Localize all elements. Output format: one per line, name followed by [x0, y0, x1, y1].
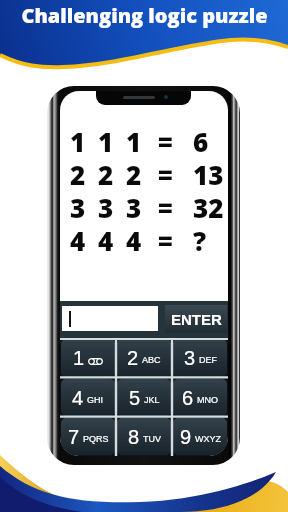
staticText: ?: [193, 223, 207, 256]
staticText: 3: [70, 190, 86, 223]
staticText: WXYZ: [195, 434, 221, 444]
staticText: =: [158, 190, 173, 223]
staticText: =: [158, 124, 173, 157]
staticText: 2: [98, 157, 114, 190]
staticText: 3: [98, 190, 114, 223]
button[interactable]: 1: [61, 339, 115, 377]
staticText: JKL: [144, 395, 160, 405]
staticText: 1: [73, 347, 85, 369]
staticText: 8: [128, 426, 140, 448]
staticText: ENTER: [171, 311, 222, 328]
button[interactable]: 7: [61, 418, 115, 455]
staticText: =: [158, 157, 173, 190]
staticText: 4: [126, 223, 142, 256]
staticText: ABC: [142, 355, 161, 365]
staticText: 4: [72, 387, 84, 409]
button[interactable]: 5: [117, 379, 171, 416]
staticText: 1: [70, 124, 86, 157]
staticText: 9: [180, 426, 192, 448]
staticText: 2: [127, 347, 139, 369]
staticText: 7: [68, 426, 80, 448]
staticText: =: [158, 223, 173, 256]
button[interactable]: ENTER: [165, 305, 227, 333]
staticText: 13: [193, 157, 224, 190]
staticText: 1: [126, 124, 142, 157]
staticText: Challenging logic puzzle: [21, 2, 268, 29]
button[interactable]: 3: [173, 339, 227, 377]
button[interactable]: 6: [173, 379, 227, 416]
button[interactable]: 9: [173, 418, 227, 455]
staticText: TUV: [143, 434, 161, 444]
staticText: MNO: [197, 395, 218, 405]
staticText: 32: [193, 190, 224, 223]
staticText: 3: [126, 190, 142, 223]
staticText: GHI: [87, 395, 104, 405]
staticText: 6: [182, 387, 194, 409]
staticText: 5: [129, 387, 141, 409]
staticText: PQRS: [83, 434, 109, 444]
staticText: 2: [70, 157, 86, 190]
staticText: 3: [184, 347, 196, 369]
staticText: DEF: [199, 355, 217, 365]
staticText: 2: [126, 157, 142, 190]
staticText: 4: [98, 223, 114, 256]
staticText: 4: [70, 223, 86, 256]
button[interactable]: 8: [117, 418, 171, 455]
button[interactable]: [62, 306, 158, 331]
button[interactable]: 4: [61, 379, 115, 416]
button[interactable]: 2: [117, 339, 171, 377]
staticText: 1: [98, 124, 114, 157]
staticText: 6: [193, 124, 209, 157]
